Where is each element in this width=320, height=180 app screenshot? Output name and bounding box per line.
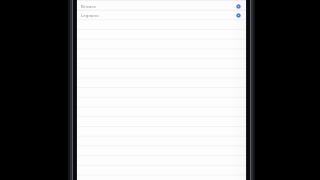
button[interactable]: Legnano	[77, 11, 246, 20]
button[interactable]: Brivaro	[77, 2, 246, 11]
staticText: Brivaro	[81, 4, 96, 10]
button[interactable]: Info for Legnano	[234, 11, 243, 20]
button[interactable]: Info for Brivaro	[234, 2, 243, 11]
staticText: Legnano	[81, 13, 99, 19]
